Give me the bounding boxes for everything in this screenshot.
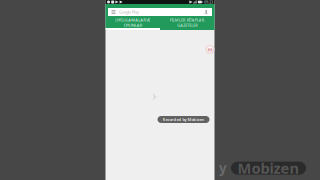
staticText: m xyxy=(207,46,212,53)
staticText: GAZETELER xyxy=(177,22,197,28)
staticText: y xyxy=(219,159,227,177)
button[interactable]: Mobizen recorder xyxy=(205,45,214,54)
staticText: UYGULAMALAR VE xyxy=(115,17,150,22)
staticText: Mobizen xyxy=(237,158,299,178)
button[interactable]: Google Play xyxy=(108,8,212,16)
staticText: FİLMLER, KİTAPLAR, xyxy=(170,17,205,22)
button[interactable]: UYGULAMALAR VE xyxy=(105,17,160,30)
staticText: Google Play xyxy=(119,9,139,15)
staticText: OYUNLAR xyxy=(124,22,142,28)
staticText: 09:23 xyxy=(204,0,213,5)
button[interactable]: FİLMLER, KİTAPLAR, xyxy=(160,17,214,30)
staticText: Recorded by Mobizen xyxy=(162,117,204,122)
